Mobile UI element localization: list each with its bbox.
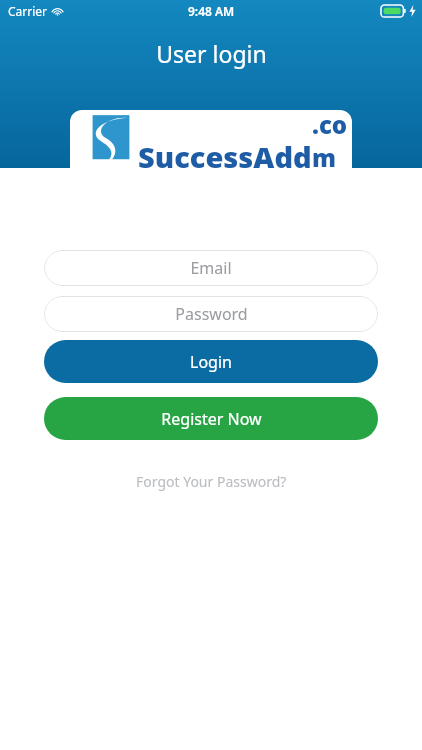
staticText: Login [190,351,232,373]
staticText: Password [175,303,248,325]
button[interactable]: Login [44,340,378,383]
staticText: Register Now [161,408,262,430]
staticText: Email [190,257,232,279]
button[interactable]: Forgot Your Password? [44,464,378,498]
button[interactable]: Email [44,250,378,286]
staticText: User login [156,38,267,69]
staticText: Forgot Your Password? [136,472,287,491]
staticText: 9:48 AM [188,3,235,19]
button[interactable]: Register Now [44,397,378,440]
staticText: Carrier [8,3,48,19]
staticText: SuccessAdd [138,137,312,176]
button[interactable]: Password [44,296,378,332]
staticText: .com [312,110,352,174]
